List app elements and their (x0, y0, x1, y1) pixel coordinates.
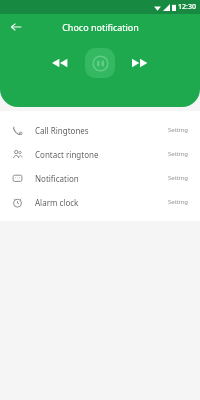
staticText: Setting (168, 126, 188, 134)
button[interactable]: Back (5, 16, 27, 38)
staticText: Contact ringtone (35, 149, 99, 160)
staticText: Setting (168, 150, 188, 158)
staticText: Setting (168, 174, 188, 182)
staticText: Setting (168, 198, 188, 206)
staticText: Notification (35, 173, 79, 184)
button[interactable]: Next (127, 50, 153, 76)
staticText: 12:30 (178, 2, 196, 12)
staticText: Choco notification (62, 21, 139, 33)
button[interactable]: Alarm clock (0, 190, 200, 214)
button[interactable]: Contact ringtone (0, 142, 200, 166)
button[interactable]: Notification (0, 166, 200, 190)
button[interactable]: Play (85, 48, 115, 78)
button[interactable]: Previous (47, 50, 73, 76)
staticText: Alarm clock (35, 197, 79, 208)
staticText: Call Ringtones (35, 125, 89, 136)
button[interactable]: Call Ringtones (0, 118, 200, 142)
